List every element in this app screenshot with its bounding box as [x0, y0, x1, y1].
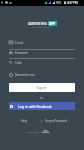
- button[interactable]: E-mail: [9, 40, 75, 45]
- staticText: Remember me: [15, 73, 35, 77]
- staticText: smart airport solutions: [32, 26, 52, 28]
- other: Facebook: [10, 105, 13, 108]
- staticText: 3:37 PM: [67, 1, 78, 5]
- button[interactable]: Password: [9, 50, 75, 55]
- staticText: APP: [49, 22, 56, 26]
- staticText: or: [40, 96, 44, 100]
- button[interactable]: Log in: [9, 83, 75, 92]
- staticText: Log in: [37, 86, 47, 90]
- button[interactable]: Remember me: [9, 72, 35, 77]
- staticText: Code: [15, 61, 22, 65]
- staticText: AIRPORTHU: [28, 22, 47, 26]
- button[interactable]: Facebook: [9, 102, 75, 110]
- staticText: Password: [15, 51, 28, 55]
- staticText: Log in with Facebook: [18, 104, 52, 109]
- button[interactable]: Help: [9, 118, 40, 124]
- staticText: E-mail: [15, 41, 24, 45]
- button[interactable]: Code: [9, 60, 75, 65]
- button[interactable]: Forgot Password: [41, 118, 72, 124]
- staticText: Powered by: [27, 131, 39, 134]
- staticText: Forgot Password: [45, 119, 68, 123]
- staticText: Help: [21, 119, 28, 123]
- staticText: 99%: [56, 1, 62, 5]
